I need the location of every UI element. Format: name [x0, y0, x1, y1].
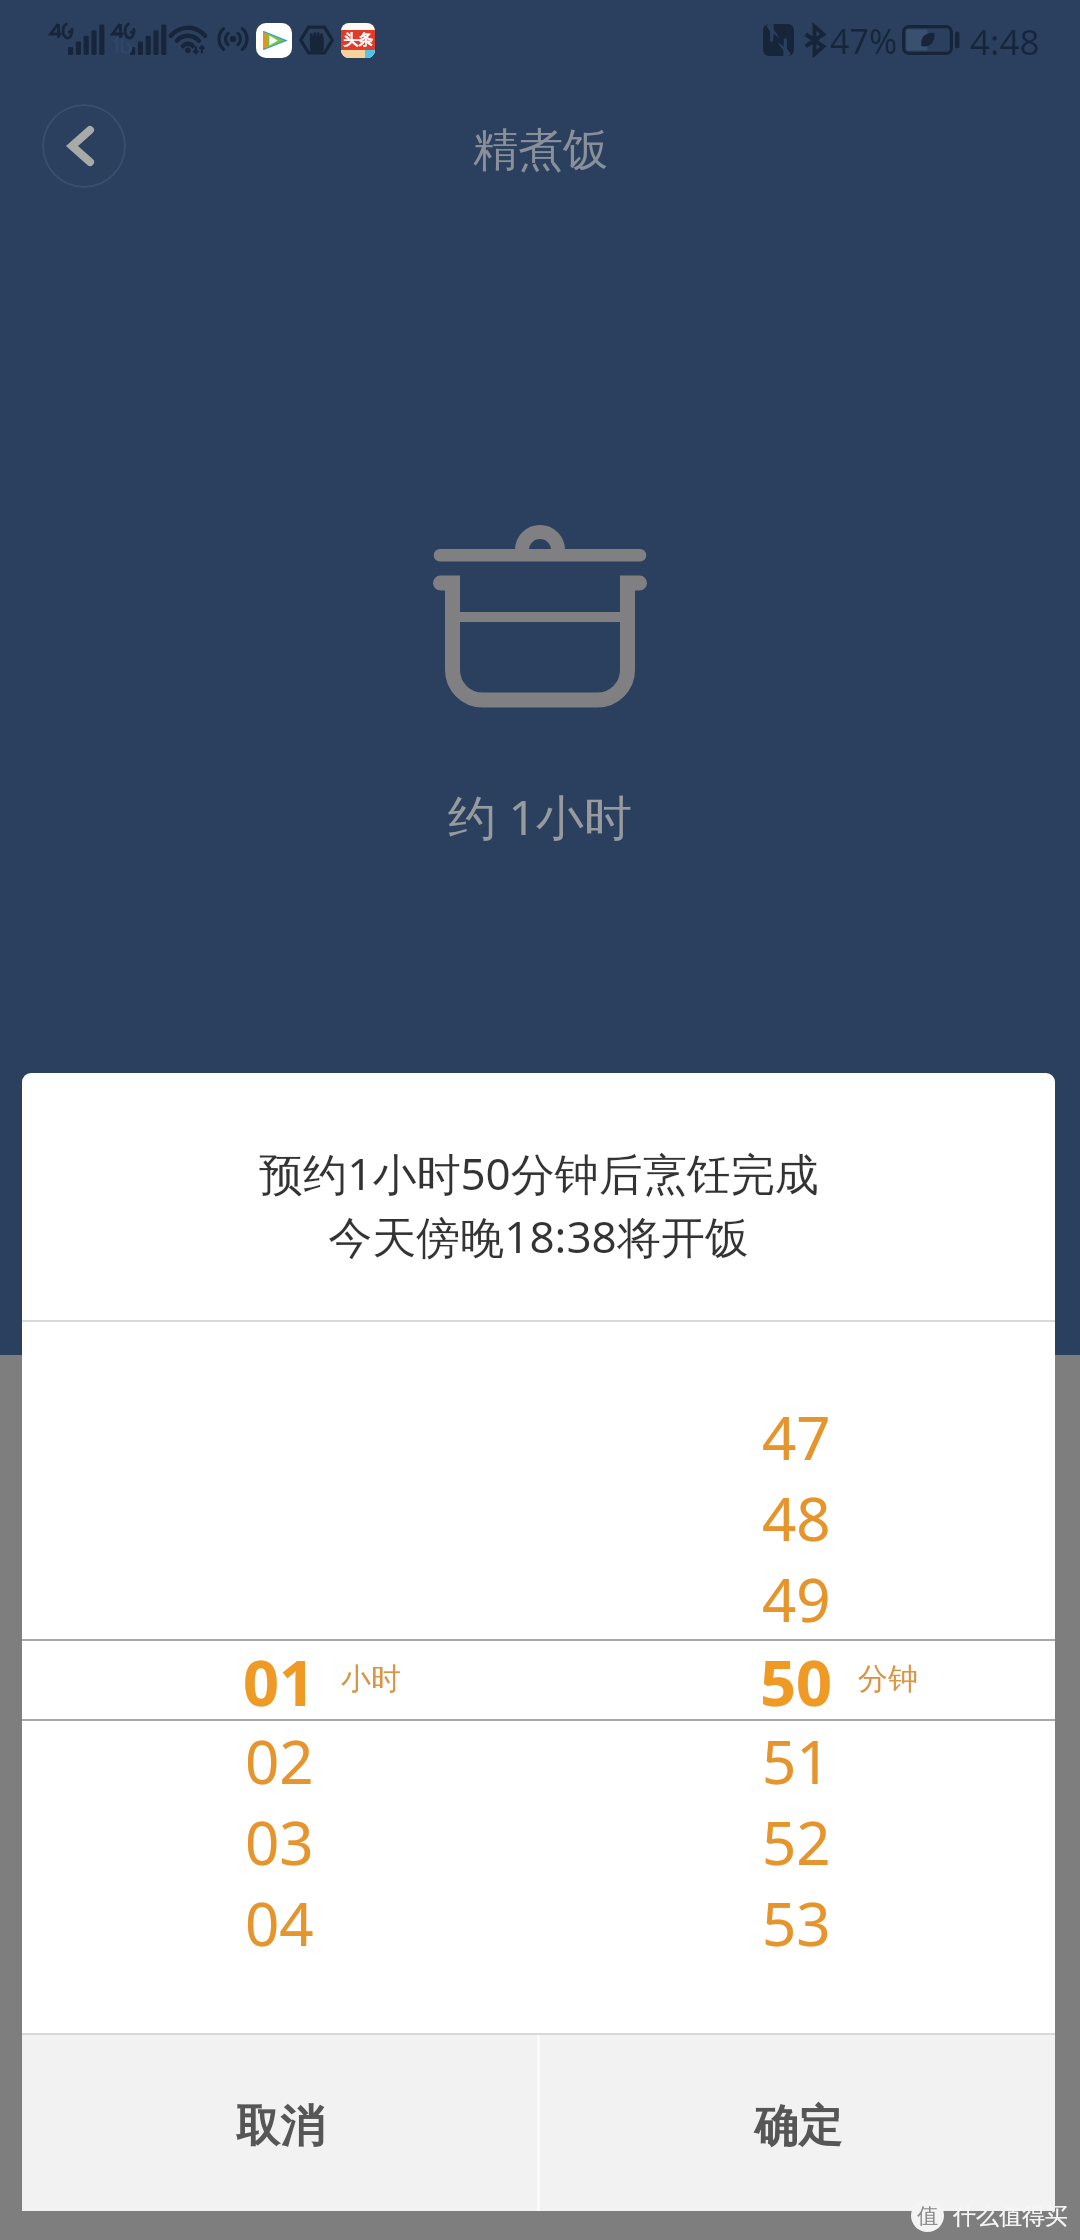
staticText: 04: [245, 1882, 314, 1962]
button[interactable]: 50: [726, 1639, 866, 1719]
staticText: 取消: [236, 2099, 324, 2154]
staticText: 头条: [343, 31, 373, 50]
button[interactable]: 53: [726, 1882, 866, 1962]
button[interactable]: Dismiss: [0, 1355, 1080, 2240]
staticText: 01: [243, 1639, 316, 1719]
staticText: 约 1小时: [448, 784, 632, 850]
button[interactable]: 49: [726, 1558, 866, 1638]
staticText: 值: [917, 2203, 938, 2229]
staticText: 47: [762, 1396, 831, 1476]
staticText: 什么值得买: [953, 2202, 1068, 2231]
staticText: 49: [762, 1558, 831, 1638]
button[interactable]: 48: [726, 1477, 866, 1557]
button[interactable]: 确定: [540, 2035, 1055, 2211]
button[interactable]: 47: [726, 1396, 866, 1476]
button[interactable]: 04: [209, 1882, 349, 1962]
staticText: 47%: [830, 18, 898, 62]
staticText: 02: [245, 1720, 314, 1800]
staticText: 小时: [341, 1660, 401, 1698]
staticText: 50: [760, 1639, 833, 1719]
button[interactable]: 02: [209, 1720, 349, 1800]
staticText: 03: [245, 1801, 314, 1881]
button[interactable]: 取消: [22, 2035, 537, 2211]
staticText: 精煮饭: [473, 122, 608, 179]
staticText: 4:48: [970, 18, 1040, 62]
button[interactable]: Back: [42, 104, 126, 188]
button[interactable]: 52: [726, 1801, 866, 1881]
staticText: 48: [762, 1477, 831, 1557]
staticText: 51: [762, 1720, 831, 1800]
staticText: 预约1小时50分钟后烹饪完成: [259, 1143, 819, 1203]
staticText: 53: [762, 1882, 831, 1962]
staticText: 确定: [754, 2099, 842, 2154]
button[interactable]: 03: [209, 1801, 349, 1881]
staticText: 今天傍晚18:38将开饭: [328, 1206, 749, 1266]
button[interactable]: 51: [726, 1720, 866, 1800]
staticText: 52: [762, 1801, 831, 1881]
staticText: 分钟: [858, 1660, 918, 1698]
button[interactable]: 01: [209, 1639, 349, 1719]
